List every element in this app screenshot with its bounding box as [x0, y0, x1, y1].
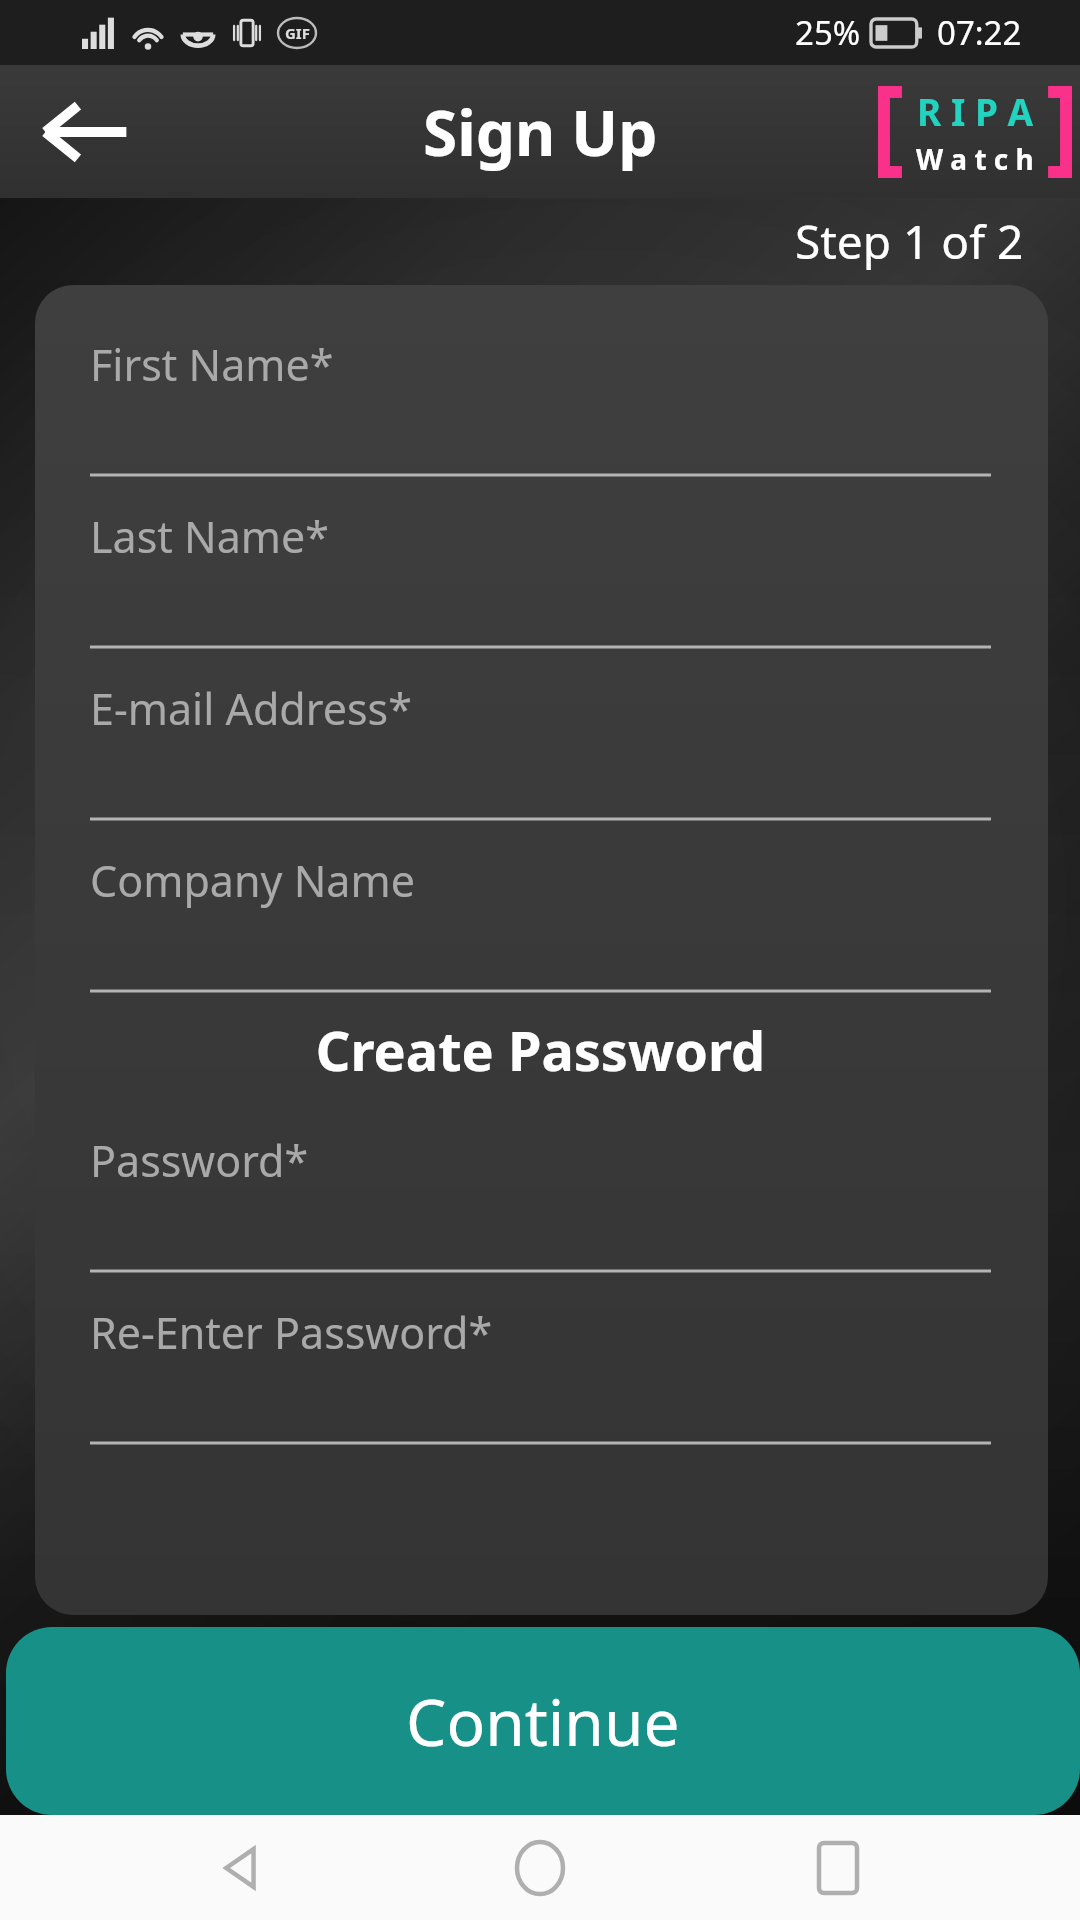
button[interactable]: Password* [90, 1115, 991, 1287]
staticText: Sign Up [423, 90, 658, 174]
button[interactable]: Continue [6, 1627, 1080, 1815]
staticText: W a t c h [916, 140, 1034, 178]
staticText: Last Name* [90, 507, 329, 566]
staticText: Create Password [90, 1013, 991, 1087]
button[interactable]: Company Name [90, 835, 991, 1007]
staticText: Password* [90, 1131, 309, 1190]
button[interactable]: Recent apps [783, 1815, 893, 1920]
staticText: Step 1 of 2 [795, 210, 1024, 273]
button[interactable]: Back [30, 77, 140, 187]
button[interactable]: Last Name* [90, 491, 991, 663]
button[interactable]: Re-Enter Password* [90, 1287, 991, 1459]
staticText: Continue [406, 1678, 680, 1765]
staticText: GIF [285, 23, 310, 43]
staticText: 25% [795, 10, 861, 55]
button[interactable]: Back [188, 1815, 298, 1920]
staticText: 07:22 [937, 10, 1022, 55]
staticText: First Name* [90, 335, 334, 394]
staticText: E-mail Address* [90, 679, 412, 738]
button[interactable]: Home [485, 1815, 595, 1920]
button[interactable]: RIPA Watch [878, 80, 1072, 184]
staticText: Company Name [90, 851, 415, 910]
staticText: R I P A [917, 86, 1034, 136]
button[interactable]: E-mail Address* [90, 663, 991, 835]
staticText: Re-Enter Password* [90, 1303, 493, 1362]
button[interactable]: First Name* [90, 319, 991, 491]
